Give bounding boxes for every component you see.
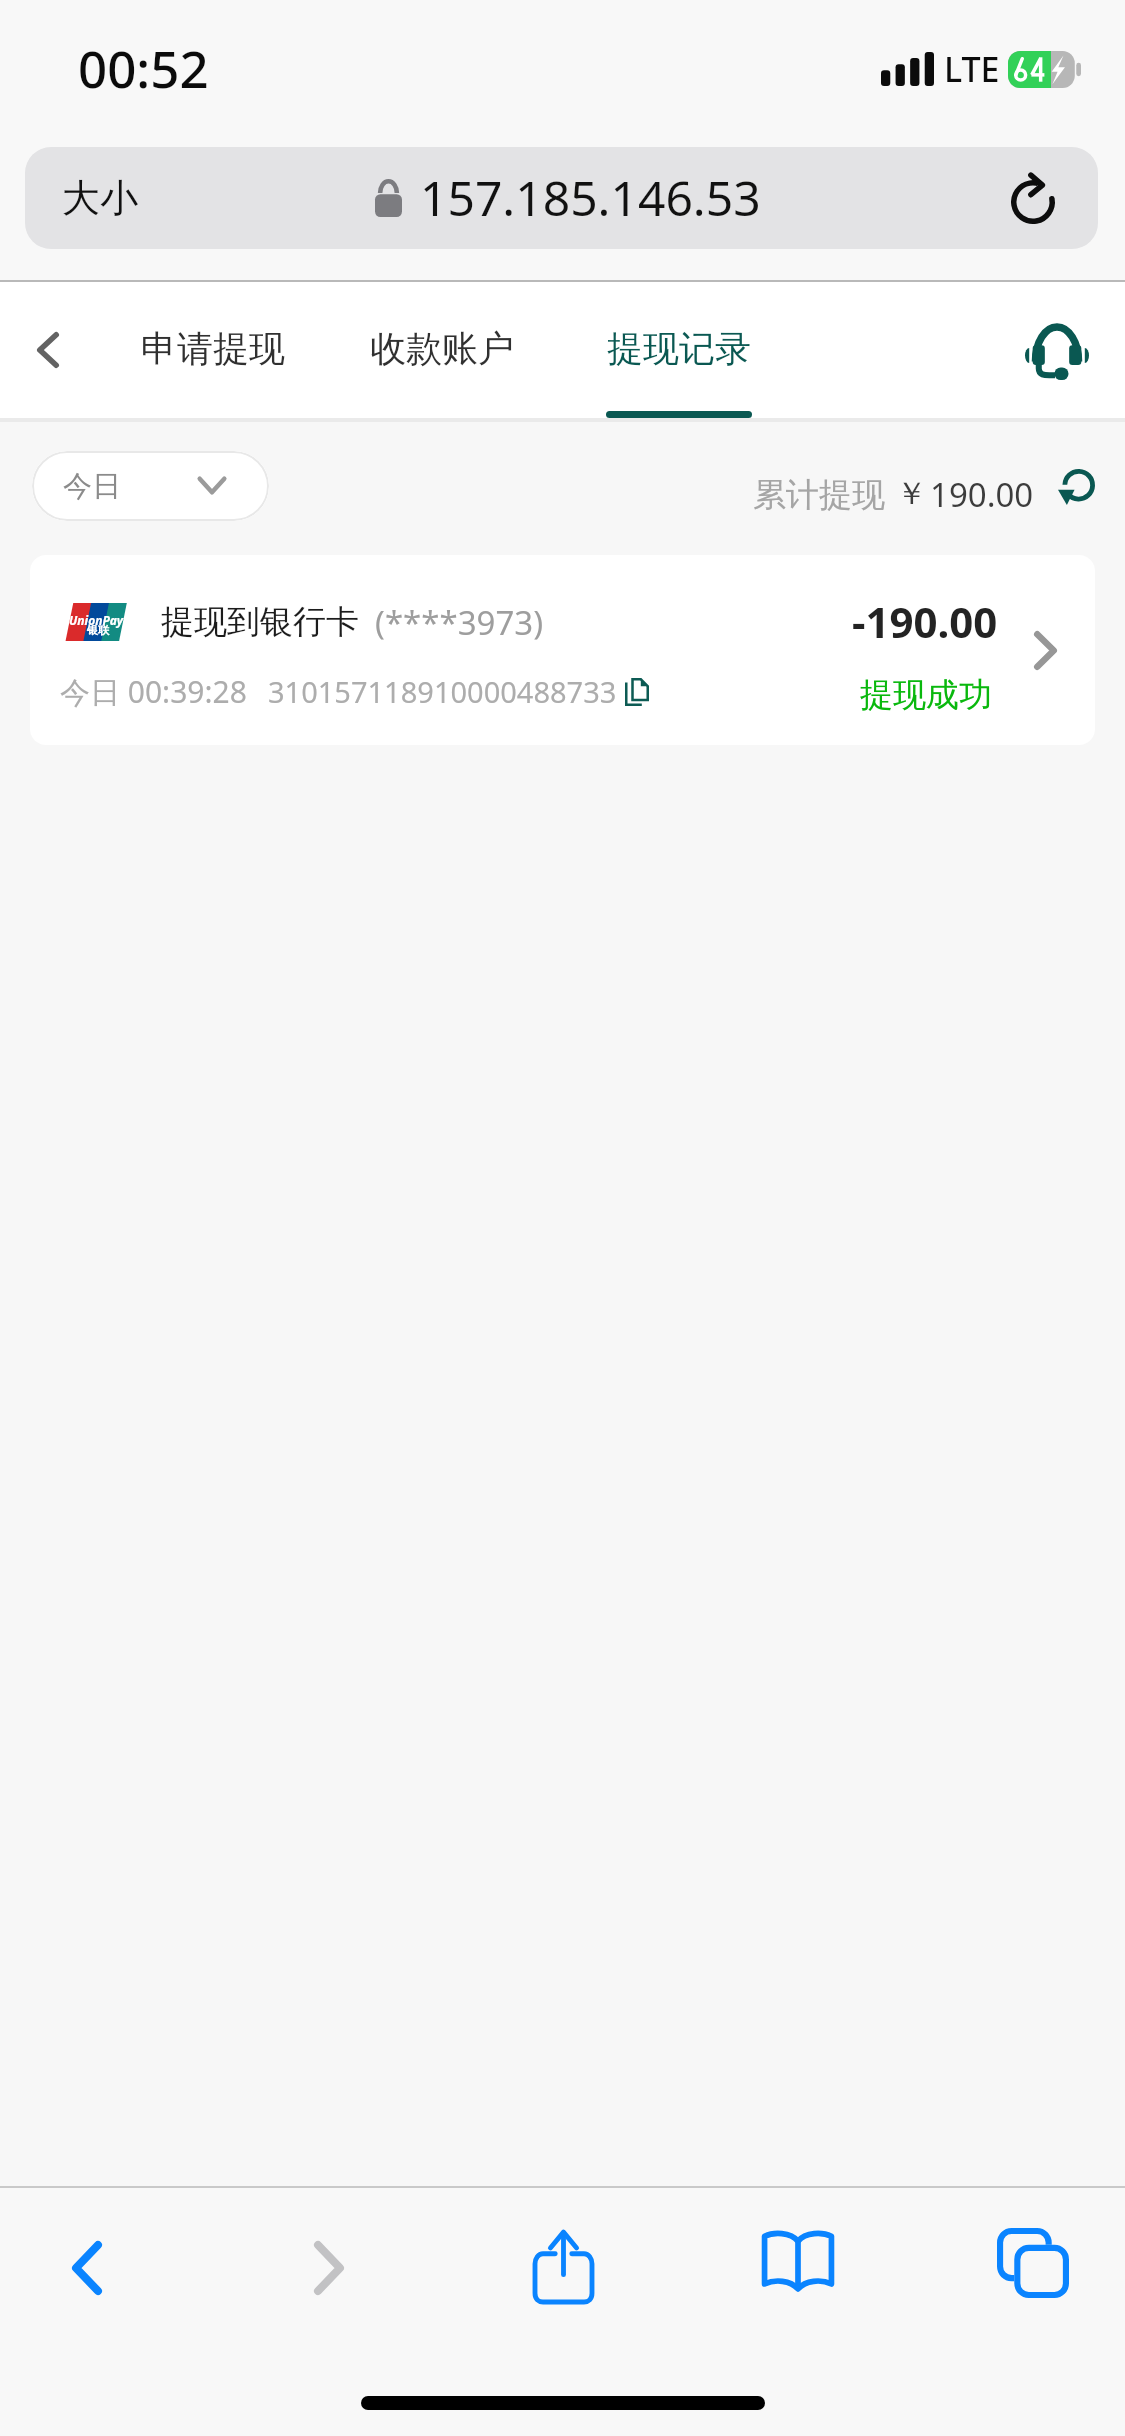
button[interactable]: 大小 bbox=[25, 147, 1098, 249]
staticText: 157.185.146.53 bbox=[420, 165, 761, 230]
staticText: -190.00 bbox=[852, 593, 998, 650]
staticText: 310157118910000488733 bbox=[268, 672, 617, 711]
button[interactable]: Share bbox=[503, 2200, 623, 2332]
staticText: (****3973) bbox=[375, 600, 544, 645]
staticText: UnionPay bbox=[69, 612, 124, 628]
staticText: 190.00 bbox=[930, 472, 1034, 517]
staticText: 大小 bbox=[62, 174, 138, 222]
staticText: 提现成功 bbox=[860, 674, 992, 716]
staticText: 银联 bbox=[87, 623, 109, 637]
staticText: 收款账户 bbox=[370, 326, 514, 371]
button[interactable]: Tabs bbox=[973, 2198, 1093, 2328]
button[interactable]: 今日 bbox=[32, 451, 269, 521]
button[interactable]: Bookmarks bbox=[738, 2200, 858, 2322]
staticText: 00:52 bbox=[78, 33, 209, 102]
staticText: 累计提现 bbox=[753, 474, 885, 516]
staticText: 提现记录 bbox=[607, 326, 751, 371]
staticText: 今日 00:39:28 bbox=[60, 671, 247, 712]
button[interactable]: Customer service bbox=[1021, 314, 1093, 386]
button[interactable]: Refresh bbox=[1044, 451, 1108, 515]
staticText: ￥ bbox=[896, 474, 927, 513]
staticText: 提现到银行卡 bbox=[161, 601, 359, 643]
button[interactable]: 提现记录 bbox=[606, 282, 752, 418]
staticText: 今日 bbox=[63, 468, 121, 505]
button[interactable]: Back bbox=[8, 310, 88, 390]
button[interactable]: 收款账户 bbox=[369, 282, 515, 418]
button[interactable]: 申请提现 bbox=[140, 282, 286, 418]
button[interactable]: Reload page bbox=[1001, 165, 1067, 231]
staticText: LTE bbox=[944, 46, 1000, 92]
button[interactable]: Forward bbox=[269, 2211, 389, 2325]
staticText: 申请提现 bbox=[141, 326, 285, 371]
button[interactable]: Copy bbox=[620, 675, 654, 709]
button[interactable]: UnionPay bbox=[30, 555, 1095, 745]
button[interactable]: Back bbox=[27, 2211, 147, 2325]
